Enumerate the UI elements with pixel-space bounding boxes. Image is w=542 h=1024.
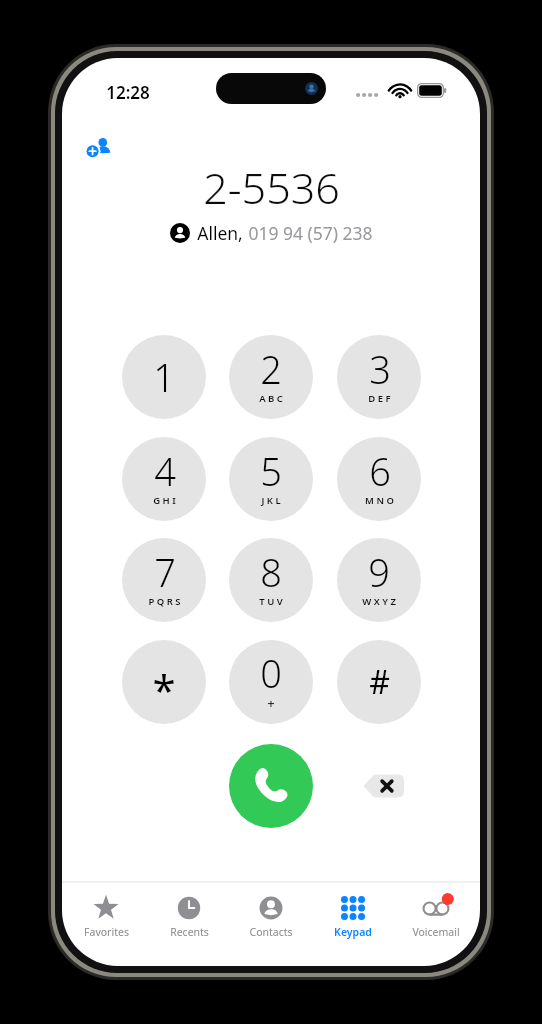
- staticText: 4: [154, 445, 176, 497]
- staticText: 2: [260, 343, 282, 395]
- staticText: Recents: [170, 925, 209, 939]
- staticText: 1: [153, 351, 175, 403]
- staticText: #: [369, 660, 390, 704]
- button[interactable]: 4: [122, 437, 206, 521]
- staticText: 7: [154, 546, 176, 598]
- staticText: 2-5536: [203, 158, 340, 217]
- staticText: P Q R S: [148, 595, 181, 608]
- staticText: 5: [260, 445, 282, 497]
- staticText: Keypad: [334, 925, 372, 939]
- staticText: 3: [369, 343, 391, 395]
- button[interactable]: *: [122, 640, 206, 724]
- staticText: 8: [260, 546, 282, 598]
- button[interactable]: Delete: [352, 766, 404, 806]
- button[interactable]: 1: [122, 335, 206, 419]
- staticText: J K L: [261, 494, 281, 507]
- staticText: D E F: [368, 392, 391, 405]
- button[interactable]: Contacts: [233, 890, 309, 943]
- staticText: G H I: [153, 494, 176, 507]
- button[interactable]: 0: [229, 640, 313, 724]
- staticText: 019 94 (57) 238: [248, 221, 373, 245]
- staticText: Favorites: [84, 925, 129, 939]
- staticText: 0: [260, 647, 282, 699]
- staticText: T U V: [259, 595, 283, 608]
- button[interactable]: 6: [337, 437, 421, 521]
- staticText: W X Y Z: [362, 595, 396, 608]
- button[interactable]: 9: [337, 538, 421, 622]
- staticText: A B C: [259, 392, 283, 405]
- button[interactable]: 7: [122, 538, 206, 622]
- button[interactable]: 8: [229, 538, 313, 622]
- button[interactable]: 3: [337, 335, 421, 419]
- staticText: Voicemail: [412, 925, 460, 939]
- button[interactable]: Voicemail: [398, 890, 474, 943]
- button[interactable]: #: [337, 640, 421, 724]
- staticText: Contacts: [249, 925, 293, 939]
- staticText: Allen,: [197, 221, 243, 245]
- button[interactable]: Favorites: [68, 890, 144, 943]
- staticText: 9: [368, 546, 390, 598]
- button[interactable]: Keypad: [315, 890, 391, 943]
- staticText: 6: [369, 445, 391, 497]
- button[interactable]: Add contact: [80, 128, 120, 168]
- staticText: +: [267, 694, 275, 712]
- button[interactable]: 2: [229, 335, 313, 419]
- staticText: 12:28: [106, 81, 150, 104]
- staticText: M N O: [365, 494, 394, 507]
- button[interactable]: Call: [229, 744, 313, 828]
- button[interactable]: 5: [229, 437, 313, 521]
- staticText: *: [152, 661, 176, 718]
- button[interactable]: Recents: [151, 890, 227, 943]
